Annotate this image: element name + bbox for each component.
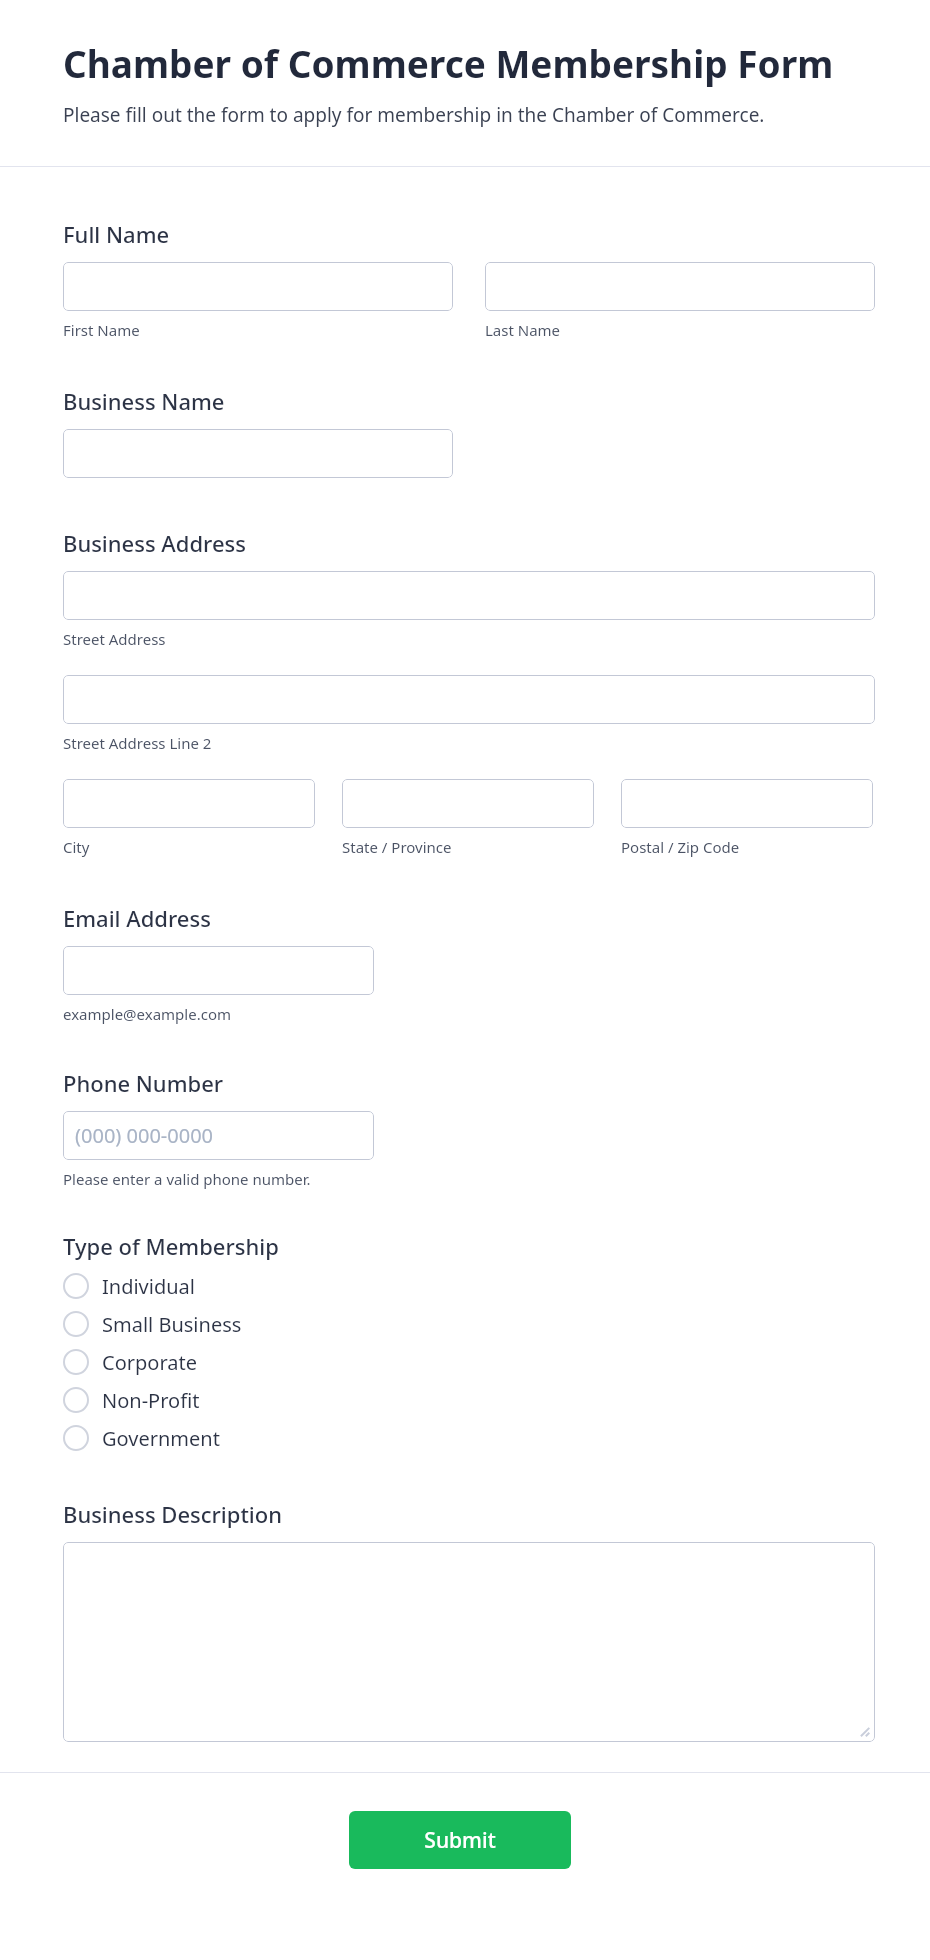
staticText: Non-Profit: [102, 1387, 200, 1414]
button[interactable]: [63, 779, 315, 828]
button[interactable]: [621, 779, 873, 828]
staticText: Business Name: [63, 386, 225, 416]
button[interactable]: Government: [63, 1419, 220, 1457]
button[interactable]: [342, 779, 594, 828]
staticText: example@example.com: [63, 1004, 231, 1024]
staticText: Last Name: [485, 320, 561, 340]
staticText: Chamber of Commerce Membership Form: [63, 38, 834, 88]
staticText: Submit: [424, 1826, 496, 1855]
staticText: Street Address: [63, 629, 166, 649]
staticText: Business Address: [63, 528, 246, 558]
button[interactable]: [63, 429, 453, 478]
staticText: Phone Number: [63, 1068, 224, 1098]
button[interactable]: Non-Profit: [63, 1381, 200, 1419]
staticText: Type of Membership: [63, 1231, 279, 1261]
button[interactable]: (000) 000-0000: [63, 1111, 374, 1160]
button[interactable]: Submit: [349, 1811, 571, 1869]
button[interactable]: Corporate: [63, 1343, 197, 1381]
staticText: Business Description: [63, 1499, 283, 1529]
button[interactable]: [63, 571, 875, 620]
staticText: Email Address: [63, 903, 211, 933]
staticText: City: [63, 837, 90, 857]
staticText: Full Name: [63, 219, 170, 249]
button[interactable]: Individual: [63, 1267, 195, 1305]
staticText: First Name: [63, 320, 140, 340]
staticText: State / Province: [342, 837, 452, 857]
button[interactable]: [63, 946, 374, 995]
button[interactable]: [485, 262, 875, 311]
staticText: Government: [102, 1425, 220, 1452]
staticText: Street Address Line 2: [63, 733, 212, 753]
staticText: Postal / Zip Code: [621, 837, 740, 857]
button[interactable]: [63, 675, 875, 724]
staticText: Please fill out the form to apply for me…: [63, 102, 765, 128]
staticText: Please enter a valid phone number.: [63, 1169, 311, 1189]
staticText: Corporate: [102, 1349, 197, 1376]
staticText: (000) 000-0000: [75, 1122, 214, 1149]
staticText: Small Business: [102, 1311, 242, 1338]
button[interactable]: [63, 1542, 875, 1742]
button[interactable]: Small Business: [63, 1305, 242, 1343]
button[interactable]: [63, 262, 453, 311]
staticText: Individual: [102, 1273, 195, 1300]
